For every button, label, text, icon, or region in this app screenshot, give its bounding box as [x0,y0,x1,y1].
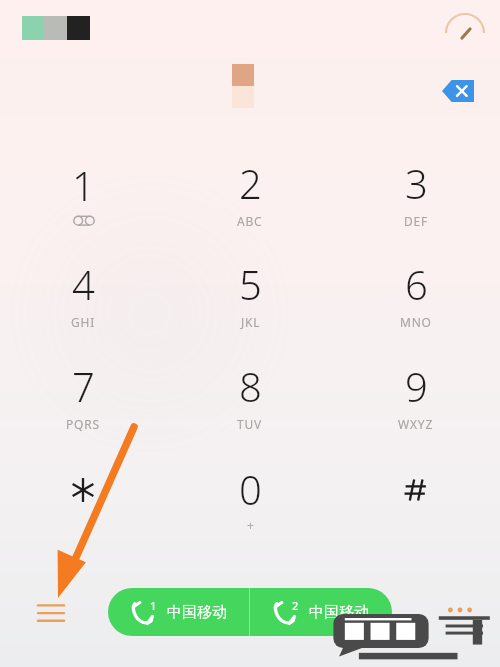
button[interactable]: Delete [438,76,478,106]
button[interactable]: More options [438,588,482,632]
staticText: GHI [71,314,96,330]
staticText: 1 [72,158,95,212]
staticText: 5 [239,257,262,311]
button[interactable]: 4 [13,245,153,341]
staticText: DEF [404,213,429,229]
staticText: MNO [400,314,432,330]
button[interactable]: 3 [346,144,486,240]
staticText: PQRS [66,416,100,432]
staticText: 中国移动 [167,603,227,622]
button[interactable]: 7 [13,347,153,443]
button[interactable]: 0 [180,449,320,545]
staticText: 3 [405,156,428,210]
staticText: 2 [292,598,299,613]
staticText: TUV [237,416,263,432]
button[interactable] [346,449,486,545]
staticText: 2 [239,156,262,210]
button[interactable]: 2 [250,588,392,636]
staticText: 0 [239,462,262,516]
button[interactable]: 6 [346,245,486,341]
staticText: 8 [239,359,262,413]
button[interactable]: 2 [180,144,320,240]
staticText: 4 [72,257,95,311]
button[interactable]: 9 [346,347,486,443]
staticText: 中国移动 [309,603,369,622]
button[interactable] [13,449,153,545]
button[interactable]: 1 [13,144,153,240]
staticText: 7 [72,359,95,413]
button[interactable]: 5 [180,245,320,341]
button[interactable]: 8 [180,347,320,443]
staticText: + [247,517,254,533]
staticText: 1 [150,598,157,613]
staticText: ABC [237,213,263,229]
staticText: JKL [241,314,261,330]
button[interactable]: Menu [28,590,74,636]
staticText: WXYZ [398,416,434,432]
staticText: 9 [405,359,428,413]
button[interactable]: 1 [108,588,249,636]
staticText: 6 [405,257,428,311]
